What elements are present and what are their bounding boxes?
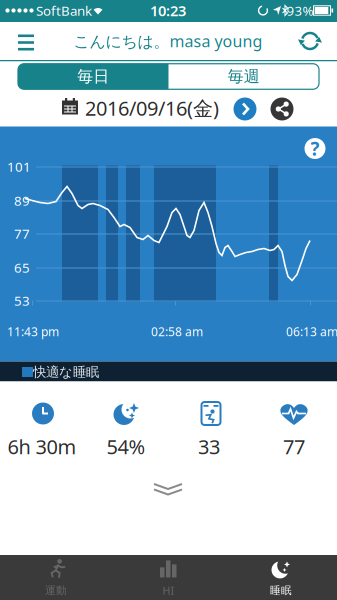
staticText: 89 [14, 192, 30, 209]
staticText: 10:23 [150, 1, 186, 20]
button[interactable]: 2016/09/16(金) [62, 91, 292, 126]
staticText: 54% [106, 433, 145, 460]
button[interactable] [154, 483, 182, 496]
staticText: HI [162, 583, 174, 598]
staticText: 65 [14, 259, 30, 276]
button[interactable]: 毎日 [18, 64, 168, 89]
button[interactable]: HI [112, 555, 225, 600]
button[interactable] [270, 97, 293, 120]
staticText: 02:58 am [151, 323, 203, 339]
button[interactable] [233, 97, 256, 120]
staticText: 06:13 am [286, 323, 337, 339]
button[interactable] [296, 27, 324, 55]
staticText: 毎日 [77, 67, 109, 86]
staticText: 101 [7, 158, 31, 175]
staticText: 93% [286, 2, 313, 19]
button[interactable]: 睡眠 [225, 555, 337, 600]
button[interactable]: 毎週 [168, 64, 319, 89]
staticText: 毎週 [228, 67, 260, 86]
button[interactable] [16, 29, 42, 57]
staticText: ? [310, 136, 319, 161]
staticText: 53 [14, 292, 30, 309]
button[interactable]: 運動 [0, 555, 112, 600]
staticText: 77 [14, 225, 30, 242]
staticText: 6h 30m [7, 433, 76, 460]
staticText: 2016/09/16(金) [85, 95, 219, 121]
staticText: 運動 [45, 584, 67, 597]
button[interactable]: ? [304, 138, 325, 159]
staticText: 77 [283, 433, 305, 460]
staticText: こんにちは。masa young [73, 30, 262, 52]
staticText: 33 [198, 433, 220, 460]
staticText: 快適な睡眠 [33, 364, 99, 380]
staticText: 11:43 pm [7, 323, 59, 339]
staticText: SoftBank [36, 2, 92, 19]
staticText: 睡眠 [270, 584, 292, 597]
